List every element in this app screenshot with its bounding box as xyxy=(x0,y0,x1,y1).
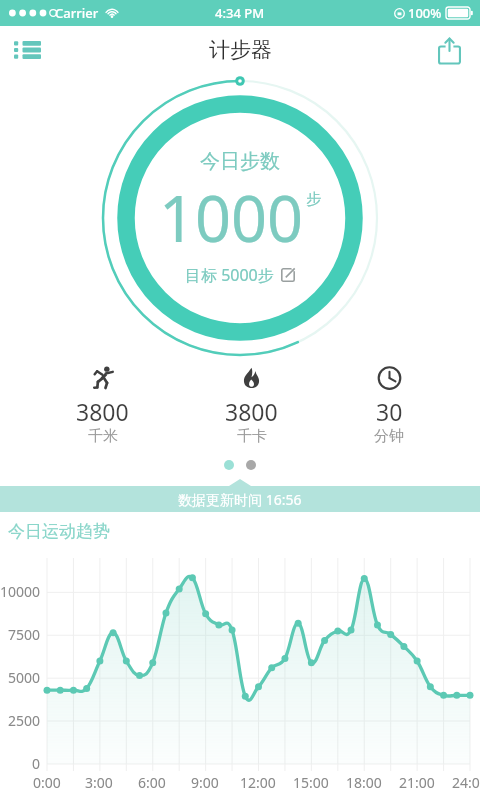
button[interactable]: 3800 xyxy=(205,362,298,448)
staticText: 3800 xyxy=(225,396,278,427)
staticText: 计步器 xyxy=(209,37,272,63)
staticText: 15:00 xyxy=(293,773,329,792)
staticText: 4:34 PM xyxy=(215,4,265,22)
staticText: 24:00 xyxy=(452,773,480,792)
staticText: 100% xyxy=(408,4,442,22)
staticText: 步 xyxy=(306,190,321,209)
staticText: 0 xyxy=(32,754,41,773)
button[interactable]: Menu xyxy=(4,27,50,73)
staticText: 9:00 xyxy=(191,773,219,792)
button[interactable]: Page 1 xyxy=(224,460,234,470)
staticText: 6:00 xyxy=(138,773,166,792)
staticText: 1000 xyxy=(159,175,304,261)
staticText: 30 xyxy=(376,396,403,427)
staticText: 12:00 xyxy=(240,773,276,792)
staticText: 7500 xyxy=(8,625,41,644)
staticText: 2500 xyxy=(8,711,41,730)
staticText: 目标 5000步 xyxy=(185,264,274,286)
staticText: 10000 xyxy=(0,582,41,601)
staticText: 数据更新时间 16:56 xyxy=(178,490,302,509)
staticText: Carrier xyxy=(55,4,99,22)
staticText: 3800 xyxy=(76,396,129,427)
staticText: 千米 xyxy=(88,427,118,446)
button[interactable]: 目标 5000步 xyxy=(180,262,300,288)
button[interactable]: 3800 xyxy=(56,362,149,448)
staticText: 18:00 xyxy=(346,773,382,792)
staticText: 分钟 xyxy=(374,427,404,446)
button[interactable]: 30 xyxy=(354,362,424,448)
staticText: 21:00 xyxy=(399,773,435,792)
staticText: 今日步数 xyxy=(200,149,280,174)
button[interactable]: Share xyxy=(426,27,472,73)
staticText: 0:00 xyxy=(33,773,61,792)
staticText: 5000 xyxy=(8,668,41,687)
staticText: 千卡 xyxy=(237,427,267,446)
staticText: 3:00 xyxy=(85,773,113,792)
button[interactable]: Page 2 xyxy=(246,460,256,470)
staticText: 今日运动趋势 xyxy=(8,521,110,542)
